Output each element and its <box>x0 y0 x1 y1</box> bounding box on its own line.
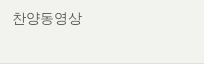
button[interactable]: 찬양동영상 <box>0 0 204 64</box>
staticText: 찬양동영상 <box>12 10 82 28</box>
